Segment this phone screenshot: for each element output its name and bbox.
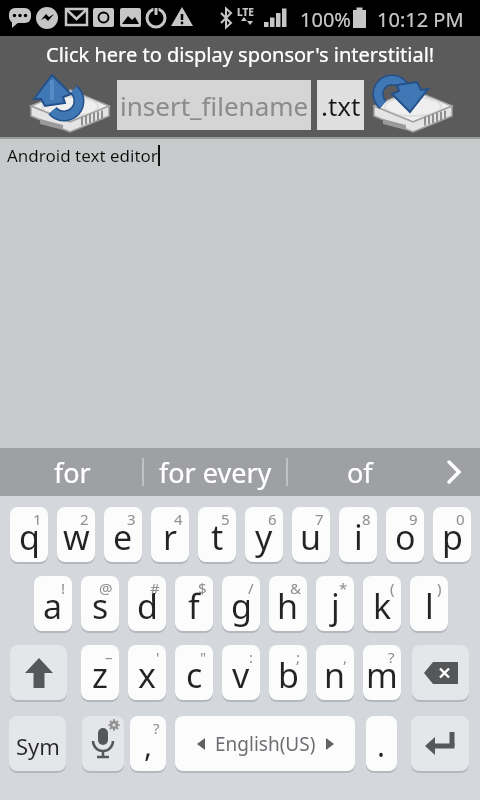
button[interactable]: of: [310, 448, 410, 496]
staticText: (: [390, 578, 395, 598]
button[interactable]: b: [269, 645, 307, 700]
button[interactable]: w: [57, 507, 95, 562]
button[interactable]: [430, 448, 480, 496]
button[interactable]: a: [34, 576, 72, 631]
button[interactable]: c: [175, 645, 213, 700]
staticText: 6: [268, 509, 277, 529]
button[interactable]: n: [316, 645, 354, 700]
button[interactable]: Sym: [9, 716, 66, 771]
staticText: *: [339, 578, 348, 598]
button[interactable]: q: [10, 507, 48, 562]
button[interactable]: g: [222, 576, 260, 631]
button[interactable]: s: [81, 576, 119, 631]
button[interactable]: o: [386, 507, 424, 562]
button[interactable]: j: [316, 576, 354, 631]
staticText: b: [278, 652, 299, 698]
button[interactable]: f: [175, 576, 213, 631]
staticText: ,: [144, 725, 153, 766]
button[interactable]: z: [81, 645, 119, 700]
staticText: 1: [33, 509, 42, 529]
button[interactable]: p: [433, 507, 471, 562]
staticText: t: [211, 514, 224, 560]
staticText: ?: [388, 647, 395, 667]
staticText: LTE: [237, 5, 254, 19]
staticText: l: [425, 583, 434, 629]
button[interactable]: i: [339, 507, 377, 562]
staticText: o: [395, 514, 416, 560]
button[interactable]: English(US): [175, 716, 355, 771]
staticText: x: [138, 652, 156, 698]
button[interactable]: Click here to display sponsor's intersti…: [0, 36, 480, 72]
staticText: w: [63, 514, 90, 560]
staticText: u: [300, 514, 322, 560]
button[interactable]: x: [128, 645, 166, 700]
staticText: j: [331, 583, 340, 629]
button[interactable]: for: [22, 448, 122, 496]
staticText: ?: [153, 718, 160, 738]
button[interactable]: y: [245, 507, 283, 562]
staticText: 7: [315, 509, 324, 529]
button[interactable]: d: [128, 576, 166, 631]
button[interactable]: [25, 74, 110, 134]
staticText: m: [366, 652, 398, 698]
button[interactable]: ,: [130, 716, 166, 771]
button[interactable]: [10, 645, 67, 700]
staticText: h: [277, 583, 299, 629]
staticText: :: [249, 647, 254, 667]
staticText: Android text editor: [7, 144, 158, 167]
staticText: s: [92, 583, 109, 629]
button[interactable]: m: [363, 645, 401, 700]
button[interactable]: [411, 716, 469, 771]
staticText: n: [324, 652, 346, 698]
staticText: q: [19, 514, 40, 560]
staticText: insert_filename: [120, 88, 309, 123]
staticText: #: [150, 578, 160, 598]
staticText: !: [61, 578, 66, 598]
staticText: k: [373, 583, 392, 629]
staticText: $: [198, 578, 207, 598]
staticText: v: [232, 652, 250, 698]
staticText: of: [347, 454, 373, 491]
button[interactable]: k: [363, 576, 401, 631]
staticText: @: [99, 578, 113, 598]
staticText: ,: [343, 647, 348, 667]
staticText: 9: [409, 509, 418, 529]
button[interactable]: .: [366, 716, 397, 771]
staticText: 3: [127, 509, 136, 529]
staticText: c: [186, 652, 203, 698]
staticText: y: [255, 514, 273, 560]
staticText: Click here to display sponsor's intersti…: [46, 41, 435, 68]
staticText: English(US): [215, 731, 316, 757]
staticText: p: [442, 514, 463, 560]
staticText: i: [354, 514, 363, 560]
staticText: .txt: [321, 88, 361, 123]
button[interactable]: [412, 645, 469, 700]
button[interactable]: t: [198, 507, 236, 562]
staticText: for: [54, 454, 91, 491]
button[interactable]: for every: [155, 448, 275, 496]
button[interactable]: insert_filename: [117, 80, 311, 130]
staticText: g: [231, 583, 252, 629]
staticText: ): [437, 578, 442, 598]
button[interactable]: e: [104, 507, 142, 562]
staticText: a: [43, 583, 63, 629]
button[interactable]: h: [269, 576, 307, 631]
button[interactable]: v: [222, 645, 260, 700]
button[interactable]: [82, 716, 124, 771]
staticText: e: [113, 514, 133, 560]
button[interactable]: r: [151, 507, 189, 562]
button[interactable]: l: [410, 576, 448, 631]
button[interactable]: u: [292, 507, 330, 562]
staticText: 2: [80, 509, 89, 529]
button[interactable]: [368, 74, 453, 134]
staticText: Sym: [16, 731, 60, 761]
staticText: for every: [159, 454, 272, 491]
staticText: ": [200, 647, 207, 667]
staticText: d: [137, 583, 158, 629]
staticText: 8: [362, 509, 371, 529]
staticText: z: [92, 652, 108, 698]
staticText: r: [163, 514, 178, 560]
staticText: –: [105, 647, 113, 667]
staticText: 100%: [300, 6, 351, 33]
staticText: ;: [296, 647, 301, 667]
